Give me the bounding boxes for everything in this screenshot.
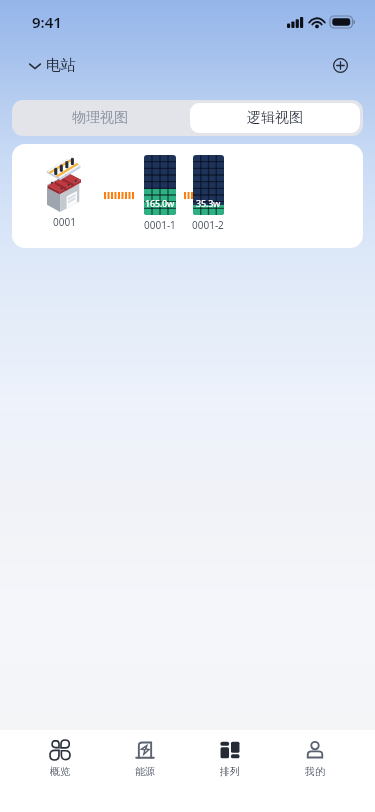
staticText: 35.3w (196, 197, 221, 209)
button[interactable]: 排列 (187, 730, 272, 778)
staticText: 排列 (220, 765, 240, 778)
staticText: 165.0w (145, 197, 175, 209)
button[interactable]: 概览 (18, 730, 102, 778)
staticText: 电站 (46, 56, 76, 75)
button[interactable]: 物理视图 (12, 100, 187, 136)
button[interactable]: 0001 (12, 144, 363, 248)
button[interactable]: Add station (328, 53, 352, 77)
staticText: 概览 (50, 765, 70, 778)
staticText: 0001-2 (192, 218, 224, 232)
staticText: 我的 (305, 765, 325, 778)
button[interactable]: 电站 (24, 52, 80, 79)
staticText: 能源 (135, 765, 155, 778)
staticText: 逻辑视图 (247, 109, 303, 127)
button[interactable]: 逻辑视图 (190, 103, 360, 133)
staticText: 0001 (53, 215, 76, 229)
staticText: 9:41 (32, 12, 62, 32)
button[interactable]: 我的 (272, 730, 357, 778)
button[interactable]: 能源 (102, 730, 187, 778)
staticText: 0001-1 (144, 218, 176, 232)
staticText: 物理视图 (72, 109, 128, 127)
